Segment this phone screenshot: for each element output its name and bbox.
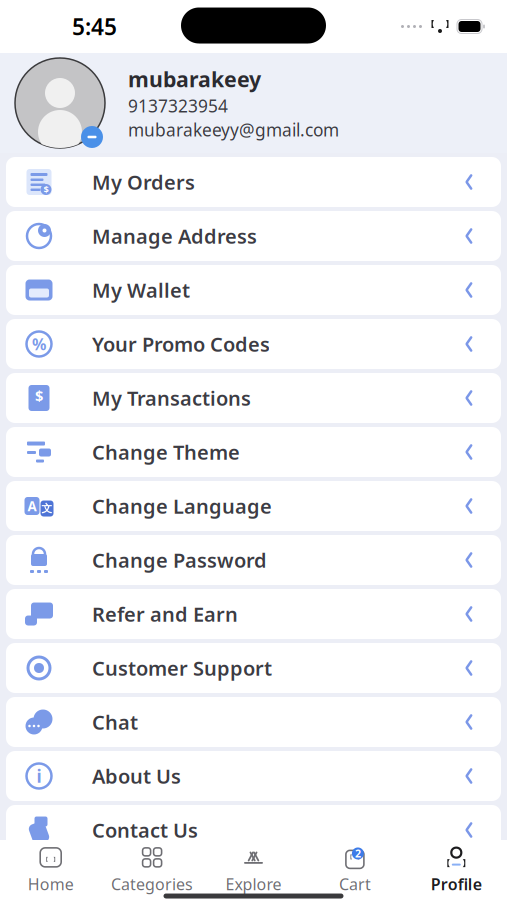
staticText: Change Theme xyxy=(92,439,240,465)
staticText: My Transactions xyxy=(92,385,251,411)
staticText: Change Password xyxy=(92,547,267,573)
button[interactable]: My Wallet xyxy=(6,265,501,315)
staticText: Contact Us xyxy=(92,817,198,843)
button[interactable]: Home xyxy=(0,842,101,898)
staticText: Cart xyxy=(339,873,371,895)
button[interactable]: Refer and Earn xyxy=(6,589,501,639)
staticText: My Orders xyxy=(92,169,195,195)
button[interactable]: A xyxy=(6,481,501,531)
button[interactable]: Change Password xyxy=(6,535,501,585)
staticText: 5:45 xyxy=(72,11,117,41)
staticText: Customer Support xyxy=(92,655,272,681)
button[interactable]: mubarakeey xyxy=(0,53,507,153)
button[interactable]: Contact Us xyxy=(6,805,501,855)
staticText: About Us xyxy=(92,763,181,789)
staticText: My Wallet xyxy=(92,277,190,303)
staticText: 9137323954 xyxy=(128,94,228,117)
staticText: Manage Address xyxy=(92,223,257,249)
staticText: Explore xyxy=(225,873,281,895)
staticText: Categories xyxy=(111,873,193,895)
staticText: Chat xyxy=(92,709,138,735)
button[interactable]: Chat xyxy=(6,697,501,747)
button[interactable]: Manage Address xyxy=(6,211,501,261)
button[interactable]: % xyxy=(6,319,501,369)
staticText: mubarakeeyy@gmail.com xyxy=(128,118,339,141)
staticText: Refer and Earn xyxy=(92,601,238,627)
button[interactable]: Profile xyxy=(406,842,507,898)
staticText: 2 xyxy=(355,846,361,861)
button[interactable]: $ xyxy=(6,373,501,423)
staticText: $ xyxy=(43,183,48,196)
staticText: % xyxy=(32,333,46,355)
staticText: $ xyxy=(35,386,43,405)
button[interactable]: 2 xyxy=(304,842,406,898)
staticText: Your Promo Codes xyxy=(92,331,270,357)
button[interactable]: Change Theme xyxy=(6,427,501,477)
button[interactable]: Categories xyxy=(101,842,203,898)
button[interactable]: $ xyxy=(6,157,501,207)
button[interactable]: Customer Support xyxy=(6,643,501,693)
staticText: Profile xyxy=(431,873,482,895)
button[interactable]: Explore xyxy=(203,842,304,898)
staticText: i xyxy=(36,764,41,787)
staticText: Home xyxy=(28,873,74,895)
staticText: A xyxy=(27,497,36,515)
staticText: Change Language xyxy=(92,493,272,519)
button[interactable]: i xyxy=(6,751,501,801)
staticText: mubarakeey xyxy=(128,65,261,93)
staticText: 文 xyxy=(41,502,52,515)
